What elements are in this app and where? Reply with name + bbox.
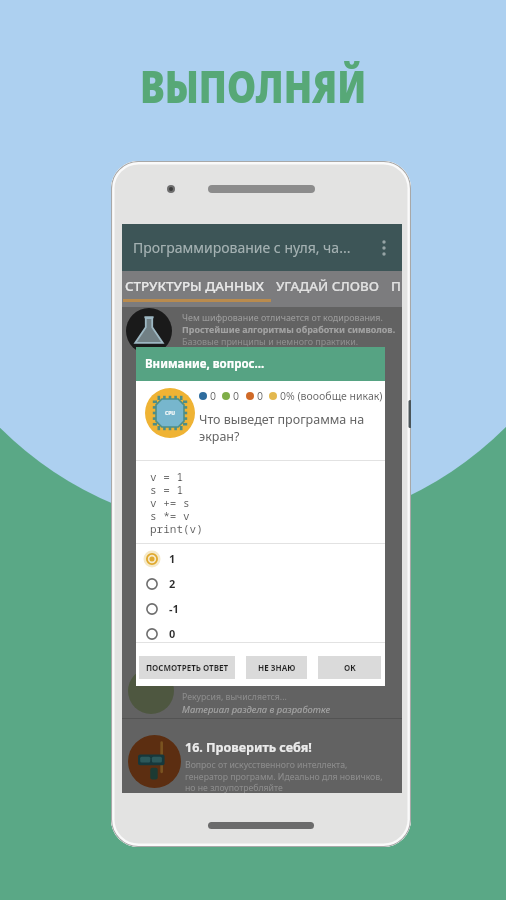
button[interactable]: П [391, 277, 393, 295]
staticText: СТРУКТУРЫ ДАННЫХ [125, 277, 264, 295]
staticText: НЕ ЗНАЮ [258, 662, 296, 673]
staticText: 2 [169, 576, 176, 591]
staticText: 1 [169, 551, 176, 566]
staticText: v = 1 s = 1 v += s s *= v print(v) [150, 469, 203, 537]
button[interactable]: УГАДАЙ СЛОВО [276, 277, 379, 295]
staticText: Вопрос от искусственного интеллекта, ген… [185, 759, 383, 794]
staticText: 0 [257, 389, 264, 403]
button[interactable]: More options [373, 237, 395, 259]
staticText: Чем шифрование отличается от кодирования… [182, 311, 383, 323]
staticText: Рекурсия, вычисляется... [182, 691, 287, 703]
staticText: Базовые принципы и немного практики. [182, 335, 359, 347]
staticText: ОК [344, 662, 356, 673]
button[interactable]: СТРУКТУРЫ ДАННЫХ [125, 277, 264, 295]
staticText: Простейшие алгоритмы обработки символов. [182, 323, 396, 335]
staticText: ПОСМОТРЕТЬ ОТВЕТ [146, 662, 229, 673]
staticText: УГАДАЙ СЛОВО [276, 277, 379, 295]
button[interactable]: 0 [136, 621, 385, 646]
staticText: П [391, 277, 393, 295]
staticText: 0 [169, 626, 176, 641]
button[interactable]: НЕ ЗНАЮ [246, 656, 307, 679]
button[interactable]: 2 [136, 571, 385, 596]
button[interactable]: Программирование с нуля, ча... [122, 224, 402, 271]
staticText: 0 [210, 389, 217, 403]
button[interactable]: -1 [136, 596, 385, 621]
staticText: 0 [233, 389, 240, 403]
staticText: Материал раздела в разработке [182, 703, 331, 716]
staticText: CPU [165, 410, 176, 417]
staticText: 0% (вооoбще никак) [280, 389, 383, 403]
staticText: ВЫПОЛНЯЙ [40, 56, 465, 116]
staticText: 16. Проверить себя! [185, 739, 312, 756]
staticText: Программирование с нуля, ча... [133, 238, 351, 257]
button[interactable]: 1 [136, 546, 385, 571]
button[interactable]: ПОСМОТРЕТЬ ОТВЕТ [139, 656, 235, 679]
staticText: Что выведет программа на экран? [199, 411, 365, 445]
staticText: -1 [169, 601, 179, 616]
button[interactable]: ОК [318, 656, 381, 679]
staticText: Внимание, вопрос... [145, 356, 265, 372]
